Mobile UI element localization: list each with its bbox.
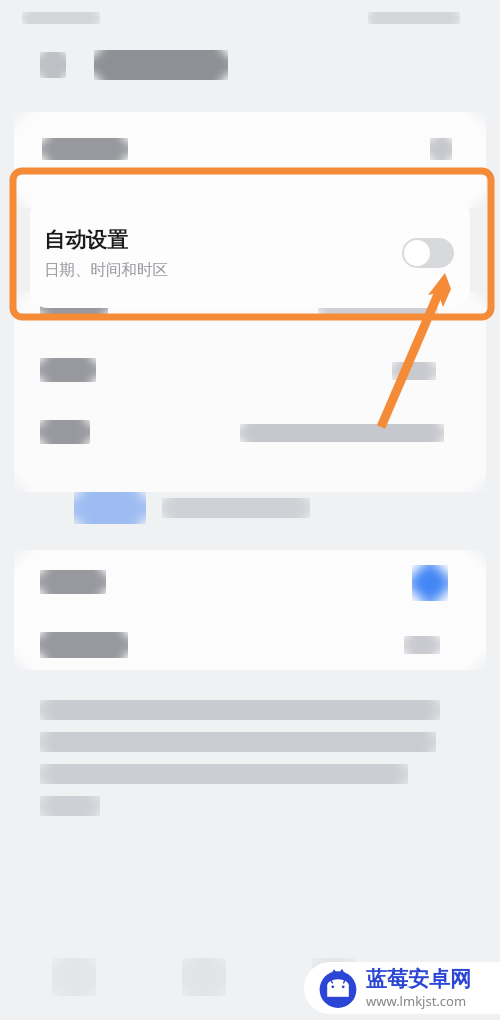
button[interactable]: 自动设置 [30, 198, 470, 308]
button[interactable]: 自动设置开关 [402, 238, 454, 268]
staticText: 蓝莓安卓网 [366, 966, 471, 992]
staticText: 日期、时间和时区 [44, 260, 168, 280]
staticText: www.lmkjst.com [366, 992, 467, 1010]
staticText: 自动设置 [44, 227, 128, 253]
